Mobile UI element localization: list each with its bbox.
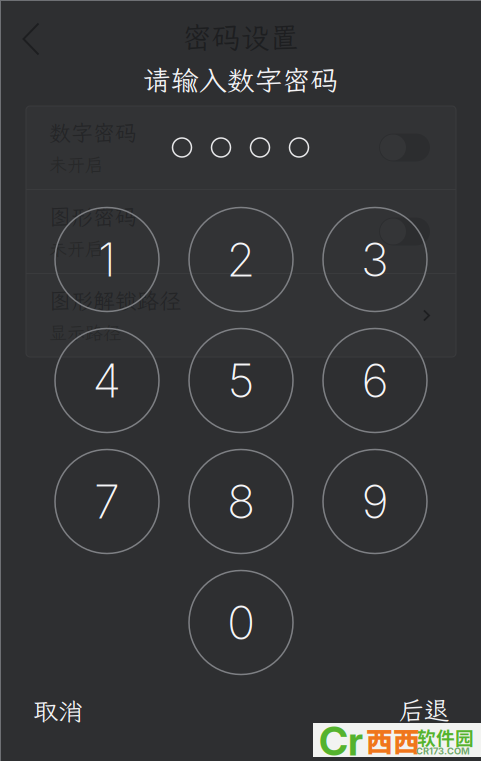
staticText: 1	[98, 231, 116, 288]
staticText: 7	[94, 473, 120, 530]
staticText: 图形密码	[49, 202, 137, 231]
staticText: 数字密码	[49, 118, 137, 147]
staticText: Cr	[319, 717, 363, 761]
staticText: 9	[361, 473, 388, 530]
staticText: 西西	[366, 721, 420, 759]
staticText: 5	[227, 352, 254, 409]
staticText: 软件园	[417, 723, 474, 750]
staticText: 8	[227, 473, 255, 530]
button[interactable]: 7	[40, 441, 174, 562]
staticText: 后退	[399, 693, 449, 727]
staticText: 0	[227, 594, 255, 651]
button[interactable]: 1	[40, 199, 174, 320]
staticText: 未开启	[49, 237, 103, 260]
button[interactable]: 取消	[33, 688, 153, 734]
button[interactable]: 5	[174, 320, 308, 441]
staticText: CR173.COM	[416, 745, 470, 757]
staticText: 请输入数字密码	[142, 62, 338, 98]
button[interactable]: 数字密码	[26, 106, 456, 189]
staticText: 2	[226, 231, 255, 288]
staticText: 6	[361, 352, 388, 409]
button[interactable]: 3	[308, 199, 442, 320]
staticText: 未开启	[49, 153, 103, 176]
button[interactable]: 9	[308, 441, 442, 562]
staticText: 显示路径	[49, 321, 121, 344]
button[interactable]: 6	[308, 320, 442, 441]
button[interactable]: 4	[40, 320, 174, 441]
staticText: 4	[92, 352, 121, 409]
button[interactable]: 后退	[329, 687, 449, 733]
staticText: 图形解锁路径	[49, 286, 181, 315]
staticText: 3	[361, 231, 389, 288]
button[interactable]: 0	[174, 562, 308, 683]
button[interactable]: 图形密码	[26, 190, 456, 273]
button[interactable]: 8	[174, 441, 308, 562]
button[interactable]: 图形解锁路径	[26, 274, 456, 357]
button[interactable]: 2	[174, 199, 308, 320]
staticText: 密码设置	[182, 18, 298, 56]
staticText: 取消	[33, 694, 83, 728]
